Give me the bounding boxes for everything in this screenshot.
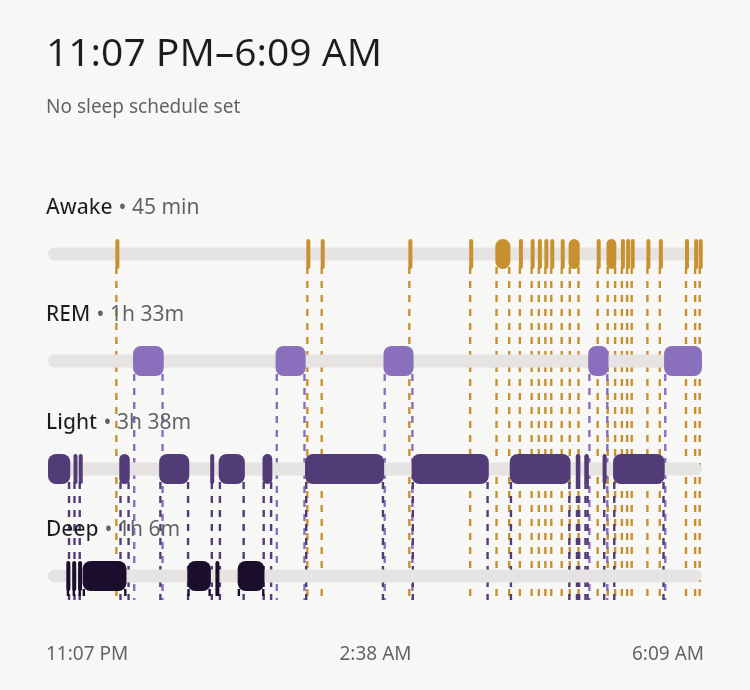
staticText: Deep	[46, 514, 99, 543]
staticText: 11:07 PM	[46, 640, 266, 666]
button[interactable]: REM	[46, 299, 185, 328]
button[interactable]: 11:07 PM–6:09 AM	[46, 24, 383, 77]
staticText: •	[91, 299, 110, 328]
button[interactable]: Awake	[46, 192, 200, 221]
staticText: 3h 38m	[117, 407, 192, 436]
staticText: 1h 6m	[118, 514, 181, 543]
button[interactable]: Light	[46, 407, 192, 436]
button[interactable]: Sleep stages hypnogram	[0, 0, 750, 690]
staticText: •	[99, 514, 118, 543]
staticText: 45 min	[132, 192, 200, 221]
staticText: 1h 33m	[110, 299, 185, 328]
button[interactable]: Deep	[46, 514, 181, 543]
staticText: Light	[46, 407, 98, 436]
staticText: 2:38 AM	[266, 640, 485, 666]
staticText: 6:09 AM	[485, 640, 704, 666]
staticText: REM	[46, 299, 91, 328]
staticText: No sleep schedule set	[46, 93, 241, 119]
staticText: •	[113, 192, 132, 221]
staticText: •	[98, 407, 117, 436]
staticText: Awake	[46, 192, 113, 221]
